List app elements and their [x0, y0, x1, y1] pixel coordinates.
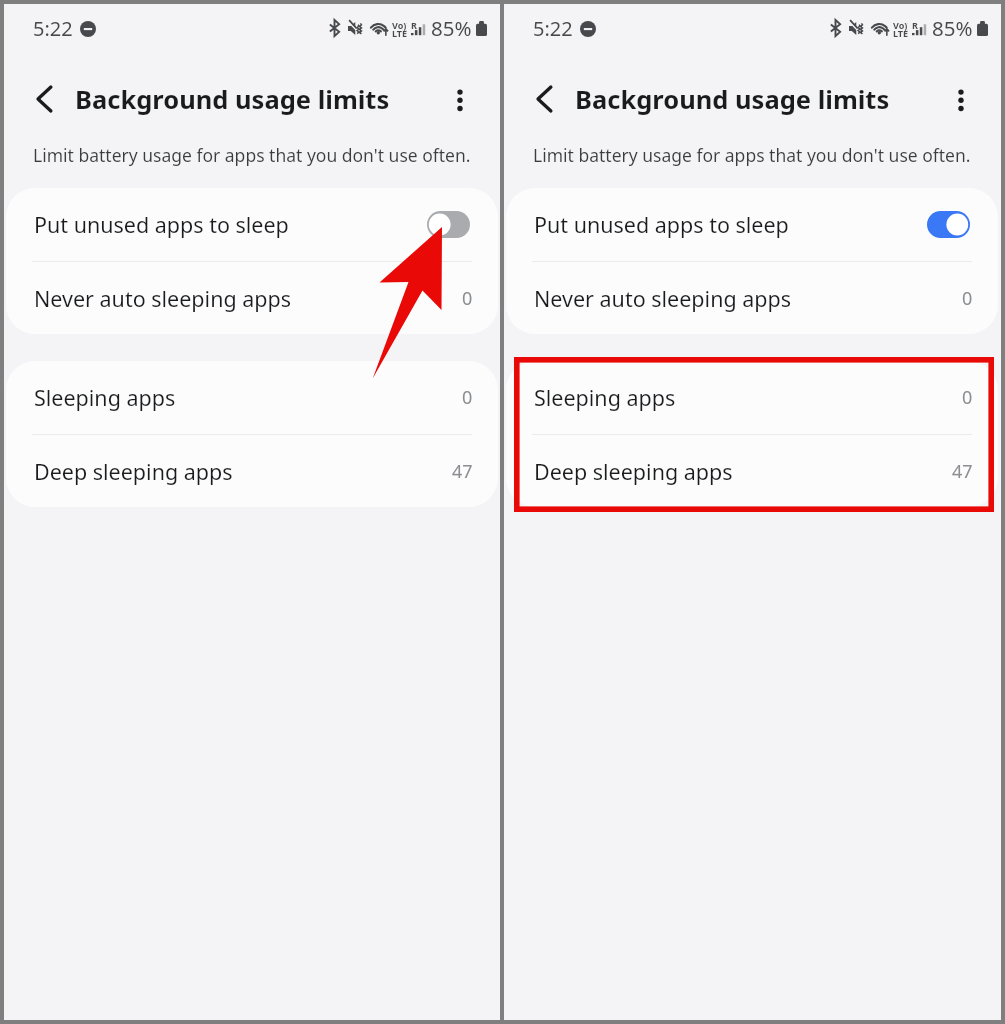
- staticText: R: [411, 19, 417, 31]
- staticText: Background usage limits: [575, 82, 890, 117]
- staticText: LTE: [392, 27, 407, 39]
- staticText: Background usage limits: [75, 82, 390, 117]
- button[interactable]: Put unused apps to sleep: [6, 188, 498, 261]
- button[interactable]: Deep sleeping apps: [506, 435, 998, 507]
- staticText: 5:22: [33, 15, 73, 42]
- staticText: Deep sleeping apps: [34, 457, 233, 486]
- button[interactable]: Never auto sleeping apps: [506, 262, 998, 334]
- button[interactable]: Back: [529, 84, 559, 114]
- button[interactable]: Sleeping apps: [506, 361, 998, 434]
- button[interactable]: Back: [29, 84, 59, 114]
- staticText: 0: [962, 286, 973, 311]
- staticText: Sleeping apps: [34, 383, 176, 412]
- button[interactable]: Put unused apps to sleep toggle: [427, 211, 470, 238]
- staticText: Never auto sleeping apps: [534, 284, 792, 313]
- staticText: Put unused apps to sleep: [534, 210, 789, 239]
- staticText: Sleeping apps: [534, 383, 676, 412]
- staticText: 0: [462, 385, 473, 410]
- staticText: LTE: [893, 27, 908, 39]
- staticText: Vo)): [392, 19, 407, 31]
- staticText: R: [912, 19, 918, 31]
- staticText: Never auto sleeping apps: [34, 284, 292, 313]
- button[interactable]: Sleeping apps: [6, 361, 498, 434]
- staticText: 85%: [932, 14, 973, 42]
- staticText: 0: [462, 286, 473, 311]
- button[interactable]: Put unused apps to sleep toggle: [927, 211, 970, 238]
- button[interactable]: Put unused apps to sleep: [506, 188, 998, 261]
- button[interactable]: Deep sleeping apps: [6, 435, 498, 507]
- staticText: 85%: [431, 14, 472, 42]
- staticText: Deep sleeping apps: [534, 457, 733, 486]
- button[interactable]: More options: [948, 86, 974, 112]
- staticText: 47: [952, 459, 973, 484]
- staticText: Vo)): [893, 19, 908, 31]
- staticText: 47: [452, 459, 473, 484]
- staticText: 5:22: [533, 15, 573, 42]
- button[interactable]: More options: [447, 86, 473, 112]
- staticText: 0: [962, 385, 973, 410]
- staticText: Limit battery usage for apps that you do…: [533, 143, 971, 167]
- staticText: Put unused apps to sleep: [34, 210, 289, 239]
- button[interactable]: Never auto sleeping apps: [6, 262, 498, 334]
- staticText: Limit battery usage for apps that you do…: [33, 143, 471, 167]
